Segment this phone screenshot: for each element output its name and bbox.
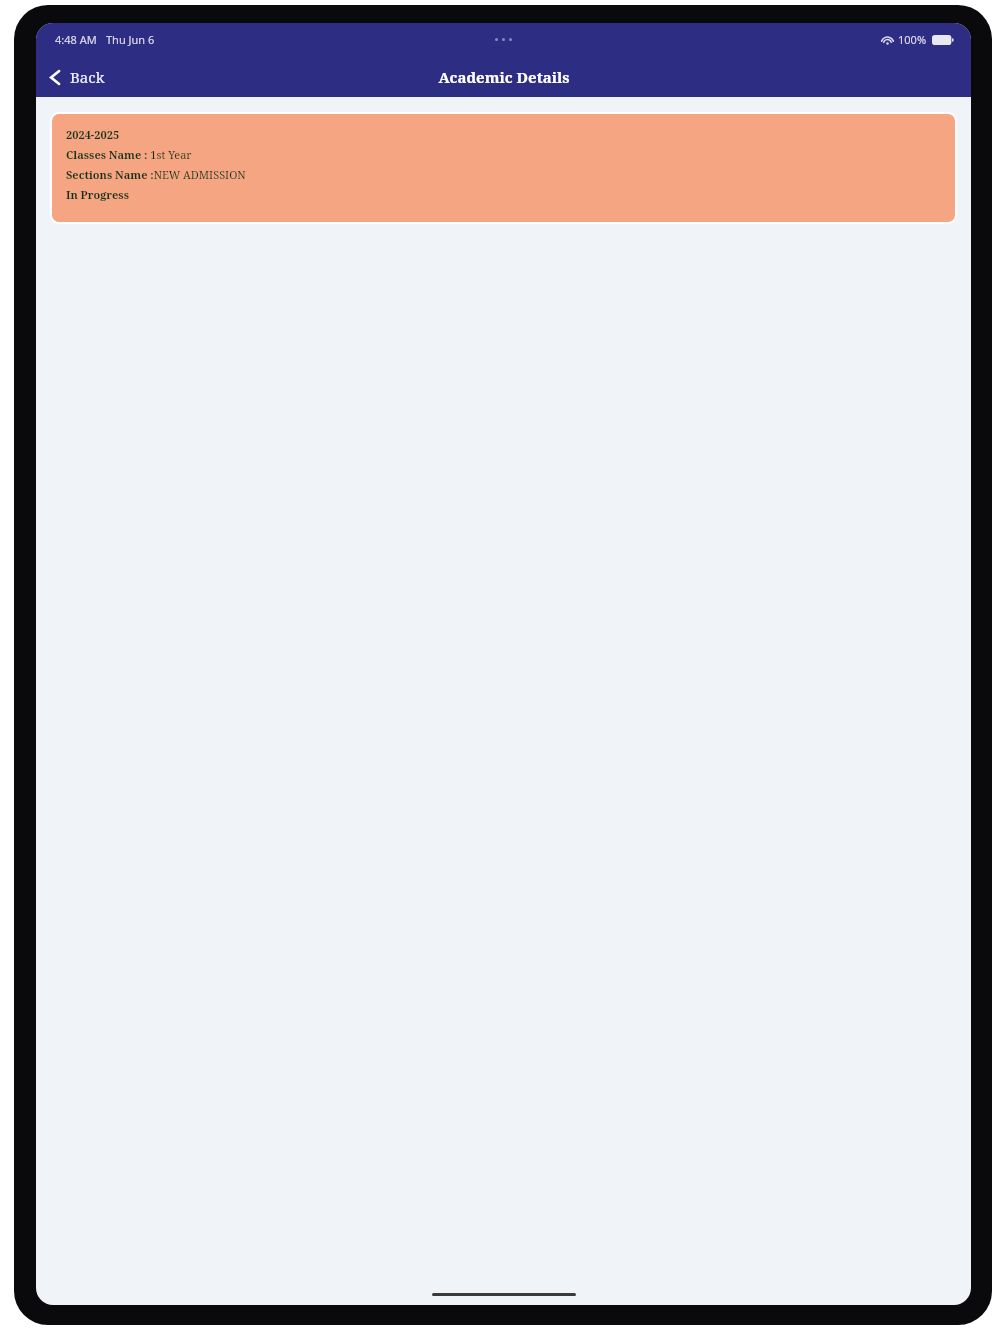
staticText: Classes Name : 1st Year [66, 147, 192, 162]
staticText: 4:48 AM [55, 32, 97, 47]
staticText: Sections Name :NEW ADMISSION [66, 167, 246, 182]
staticText: Academic Details [438, 67, 570, 87]
staticText: 2024-2025 [66, 127, 120, 142]
staticText: In Progress [66, 187, 129, 202]
button[interactable]: 2024-2025 [50, 112, 957, 224]
staticText: Back [70, 67, 105, 87]
staticText: Thu Jun 6 [106, 32, 155, 47]
staticText: 100% [898, 32, 927, 47]
button[interactable]: Back [36, 61, 119, 93]
